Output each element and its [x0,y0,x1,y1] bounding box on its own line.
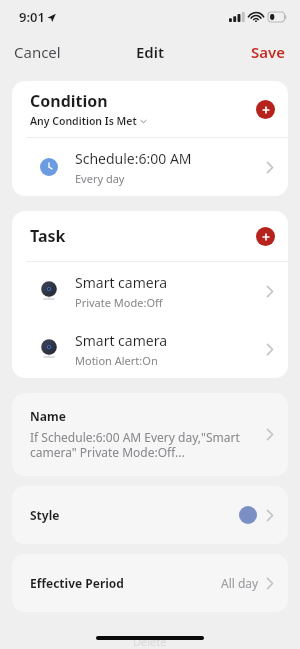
staticText: Schedule:6:00 AM [75,149,192,168]
staticText: Delete [133,634,167,649]
staticText: Style [30,507,239,523]
staticText: Edit [136,42,165,62]
staticText: Effective Period [30,575,221,591]
staticText: Every day [75,171,125,186]
staticText: Name [30,408,66,424]
button[interactable]: Name [12,393,288,476]
staticText: Condition [30,90,108,112]
button[interactable]: Save [237,36,300,68]
button[interactable]: Add [256,100,275,119]
button[interactable]: Cancel [0,36,75,68]
staticText: Smart camera [75,331,168,350]
staticText: If Schedule:6:00 AM Every day,"Smart cam… [30,429,240,461]
staticText: Save [251,42,286,62]
staticText: Private Mode:Off [75,295,163,310]
staticText: Task [30,225,256,247]
staticText: Smart camera [75,273,168,292]
button[interactable]: Schedule:6:00 AM [12,138,288,196]
button[interactable]: Smart camera [12,262,288,320]
staticText: All day [221,575,259,591]
staticText: 9:01 [19,8,45,26]
button[interactable]: Add [256,227,275,246]
button[interactable]: Smart camera [12,320,288,378]
staticText: Any Condition Is Met [30,114,137,128]
staticText: Cancel [14,42,61,62]
button[interactable]: Effective Period [12,554,288,612]
staticText: Motion Alert:On [75,353,158,368]
button[interactable]: Style [12,486,288,544]
